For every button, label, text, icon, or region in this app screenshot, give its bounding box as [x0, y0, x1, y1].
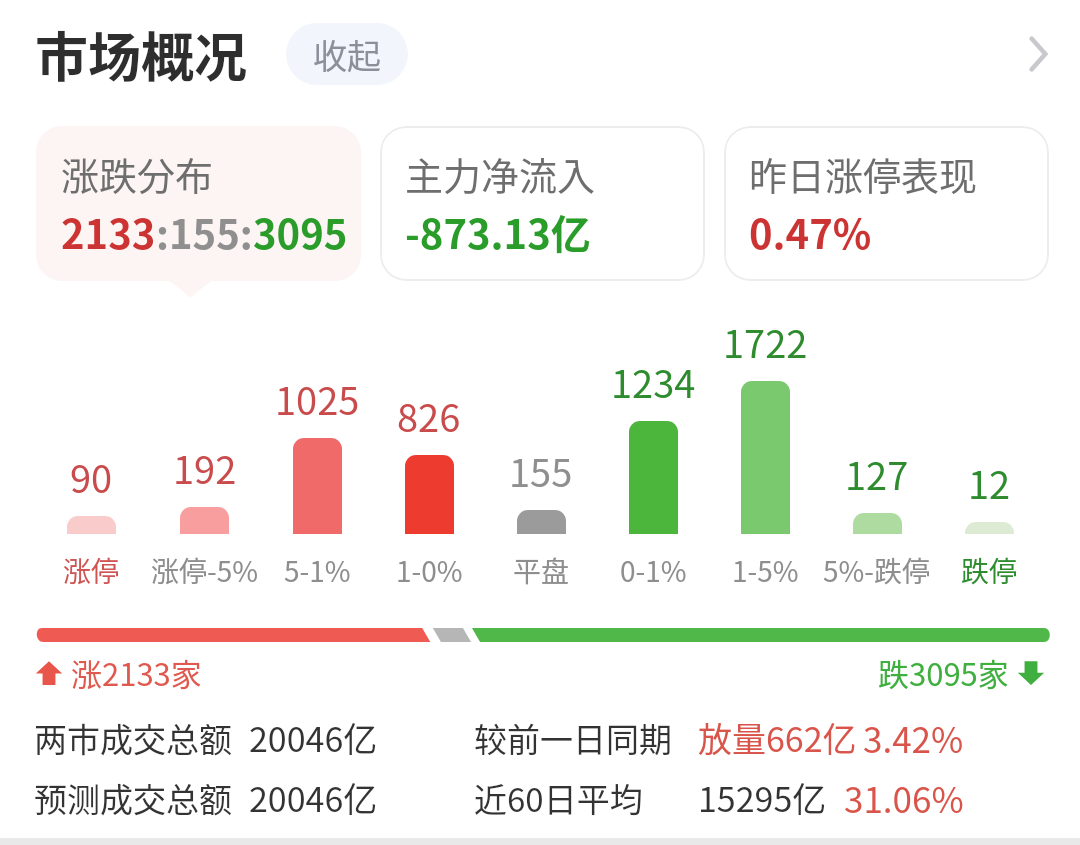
- staticText: 90: [70, 449, 113, 504]
- staticText: 1025: [275, 371, 360, 426]
- staticText: 1722: [723, 314, 808, 369]
- staticText: -873.13亿: [405, 203, 591, 261]
- staticText: 826: [397, 388, 461, 443]
- staticText: 5-1%: [284, 550, 351, 591]
- button[interactable]: 涨跌分布: [36, 126, 361, 281]
- staticText: 20046亿: [249, 773, 378, 822]
- staticText: 市场概况: [35, 16, 247, 93]
- staticText: 20046亿: [249, 713, 378, 762]
- staticText: 近60日平均: [474, 774, 643, 822]
- staticText: 15295亿: [698, 773, 827, 822]
- staticText: 两市成交总额: [34, 714, 232, 762]
- staticText: 5%-跌停: [823, 550, 931, 591]
- staticText: 155: [509, 443, 573, 498]
- staticText: 3.42%: [863, 712, 964, 763]
- staticText: 涨停-5%: [151, 550, 259, 591]
- staticText: 涨2133家: [71, 650, 202, 695]
- button[interactable]: 收起: [286, 23, 408, 85]
- staticText: :155:: [156, 203, 253, 261]
- staticText: 0.47%: [749, 203, 872, 261]
- staticText: 涨停: [63, 550, 120, 591]
- button[interactable]: 主力净流入: [380, 126, 705, 281]
- staticText: 12: [968, 455, 1011, 510]
- staticText: 2133: [61, 203, 156, 261]
- staticText: 预测成交总额: [34, 774, 232, 822]
- staticText: 放量662亿: [698, 713, 857, 762]
- staticText: 涨跌分布: [61, 146, 214, 201]
- staticText: 192: [173, 440, 237, 495]
- staticText: 1-5%: [732, 550, 799, 591]
- staticText: 平盘: [513, 550, 570, 591]
- staticText: 1234: [611, 354, 696, 409]
- staticText: 0-1%: [620, 550, 687, 591]
- staticText: 较前一日同期: [474, 714, 672, 762]
- staticText: 1-0%: [396, 550, 463, 591]
- staticText: 3095: [253, 203, 348, 261]
- staticText: 跌3095家: [878, 650, 1009, 695]
- staticText: 收起: [313, 30, 381, 79]
- staticText: 31.06%: [844, 772, 964, 823]
- button[interactable]: 展开: [998, 14, 1078, 94]
- staticText: 127: [845, 446, 909, 501]
- staticText: 主力净流入: [405, 146, 596, 201]
- staticText: 跌停: [961, 550, 1018, 591]
- button[interactable]: 昨日涨停表现: [724, 126, 1049, 281]
- staticText: 昨日涨停表现: [749, 146, 978, 201]
